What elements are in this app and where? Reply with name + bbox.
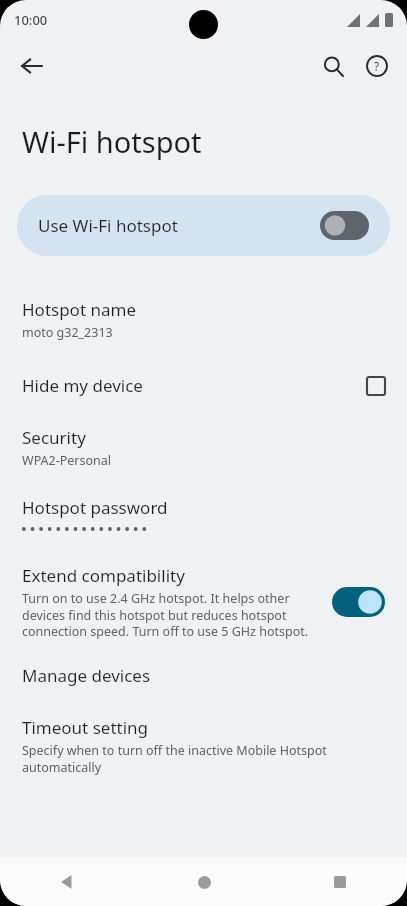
button[interactable]: Timeout setting	[0, 716, 407, 775]
staticText: Hotspot name	[22, 298, 136, 321]
staticText: Security	[22, 426, 86, 449]
button[interactable]: Extend compatibility	[0, 564, 407, 639]
button[interactable]: Back	[10, 44, 54, 88]
button[interactable]: Hide my device	[0, 374, 407, 397]
button[interactable]: Home	[183, 861, 225, 903]
staticText: Wi-Fi hotspot	[22, 122, 202, 161]
button[interactable]: Search	[311, 44, 355, 88]
button[interactable]: Security	[0, 426, 407, 469]
button[interactable]: Use Wi-Fi hotspot	[17, 195, 390, 256]
staticText: Manage devices	[22, 664, 151, 687]
staticText: Hotspot password	[22, 496, 168, 519]
button[interactable]: Hotspot password	[0, 496, 407, 533]
button[interactable]: Help	[355, 44, 399, 88]
button[interactable]: Manage devices	[0, 664, 407, 687]
staticText: Hide my device	[22, 374, 367, 397]
button[interactable]: Back	[46, 861, 88, 903]
button[interactable]: Recents	[319, 861, 361, 903]
staticText: Extend compatibility	[22, 564, 185, 587]
staticText: Specify when to turn off the inactive Mo…	[22, 742, 347, 775]
staticText: moto g32_2313	[22, 324, 113, 341]
staticText: 10:00	[14, 11, 48, 29]
staticText: Turn on to use 2.4 GHz hotspot. It helps…	[22, 590, 322, 639]
staticText: Timeout setting	[22, 716, 149, 739]
staticText: Use Wi-Fi hotspot	[38, 214, 178, 237]
staticText: WPA2-Personal	[22, 452, 112, 469]
staticText: ?	[374, 58, 380, 74]
button[interactable]: Hotspot name	[0, 298, 407, 341]
